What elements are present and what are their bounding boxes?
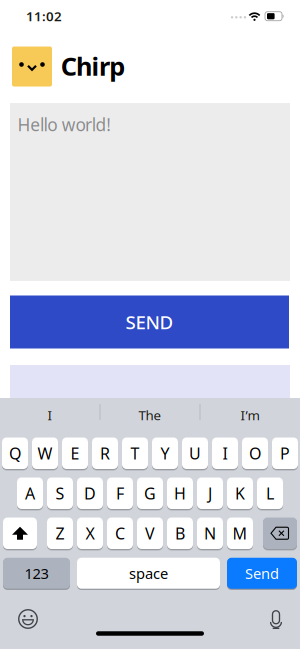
button[interactable]: I (2, 401, 98, 429)
button[interactable]: S (47, 477, 73, 509)
staticText: space (129, 563, 168, 583)
staticText: I (222, 443, 227, 464)
button[interactable]: The (102, 401, 198, 429)
staticText: Y (160, 443, 169, 464)
button[interactable]: Send (227, 558, 297, 589)
button[interactable]: 123 (3, 558, 70, 589)
staticText: Z (55, 523, 64, 544)
button[interactable]: Dictate (261, 605, 291, 635)
button[interactable]: Emoji (13, 604, 43, 634)
staticText: A (25, 483, 35, 504)
button[interactable]: F (107, 477, 133, 509)
button[interactable]: Q (2, 437, 28, 469)
button[interactable]: V (137, 517, 163, 549)
staticText: N (204, 523, 216, 544)
button[interactable]: K (227, 477, 253, 509)
button[interactable]: Z (47, 517, 73, 549)
staticText: K (235, 483, 245, 504)
staticText: SEND (125, 310, 173, 334)
button[interactable]: R (92, 437, 118, 469)
button[interactable]: X (77, 517, 103, 549)
button[interactable]: M (227, 517, 253, 549)
button[interactable]: L (257, 477, 283, 509)
button[interactable]: I (212, 437, 238, 469)
button[interactable]: E (62, 437, 88, 469)
button[interactable]: D (77, 477, 103, 509)
button[interactable]: I’m (202, 401, 298, 429)
staticText: I’m (240, 406, 259, 424)
button[interactable]: W (32, 437, 58, 469)
staticText: W (37, 443, 52, 464)
button[interactable]: O (242, 437, 268, 469)
button[interactable]: A (17, 477, 43, 509)
staticText: F (116, 483, 124, 504)
staticText: S (55, 483, 64, 504)
staticText: O (249, 443, 261, 464)
staticText: J (208, 483, 212, 504)
staticText: P (280, 443, 290, 464)
button[interactable]: J (197, 477, 223, 509)
staticText: H (174, 483, 186, 504)
staticText: E (70, 443, 79, 464)
staticText: L (266, 483, 274, 504)
button[interactable]: N (197, 517, 223, 549)
staticText: The (138, 406, 161, 424)
staticText: X (85, 523, 94, 544)
button[interactable]: Delete (263, 517, 297, 549)
staticText: 123 (24, 563, 48, 583)
button[interactable]: Y (152, 437, 178, 469)
button[interactable]: G (137, 477, 163, 509)
staticText: G (144, 483, 156, 504)
staticText: Hello world! (17, 113, 111, 136)
staticText: Send (245, 563, 279, 583)
button[interactable]: C (107, 517, 133, 549)
staticText: T (130, 443, 139, 464)
button[interactable]: P (272, 437, 298, 469)
staticText: Q (9, 443, 21, 464)
staticText: R (100, 443, 110, 464)
staticText: C (115, 523, 125, 544)
button[interactable]: B (167, 517, 193, 549)
staticText: D (84, 483, 96, 504)
staticText: V (145, 523, 155, 544)
button[interactable]: space (77, 558, 220, 589)
button[interactable]: SEND (10, 295, 289, 348)
staticText: 11:02 (26, 7, 62, 25)
staticText: U (189, 443, 201, 464)
staticText: M (232, 523, 247, 544)
staticText: B (175, 523, 185, 544)
staticText: I (47, 406, 52, 424)
button[interactable]: U (182, 437, 208, 469)
button[interactable]: H (167, 477, 193, 509)
button[interactable]: Shift (3, 517, 37, 549)
staticText: Chirp (61, 49, 125, 83)
button[interactable]: T (122, 437, 148, 469)
